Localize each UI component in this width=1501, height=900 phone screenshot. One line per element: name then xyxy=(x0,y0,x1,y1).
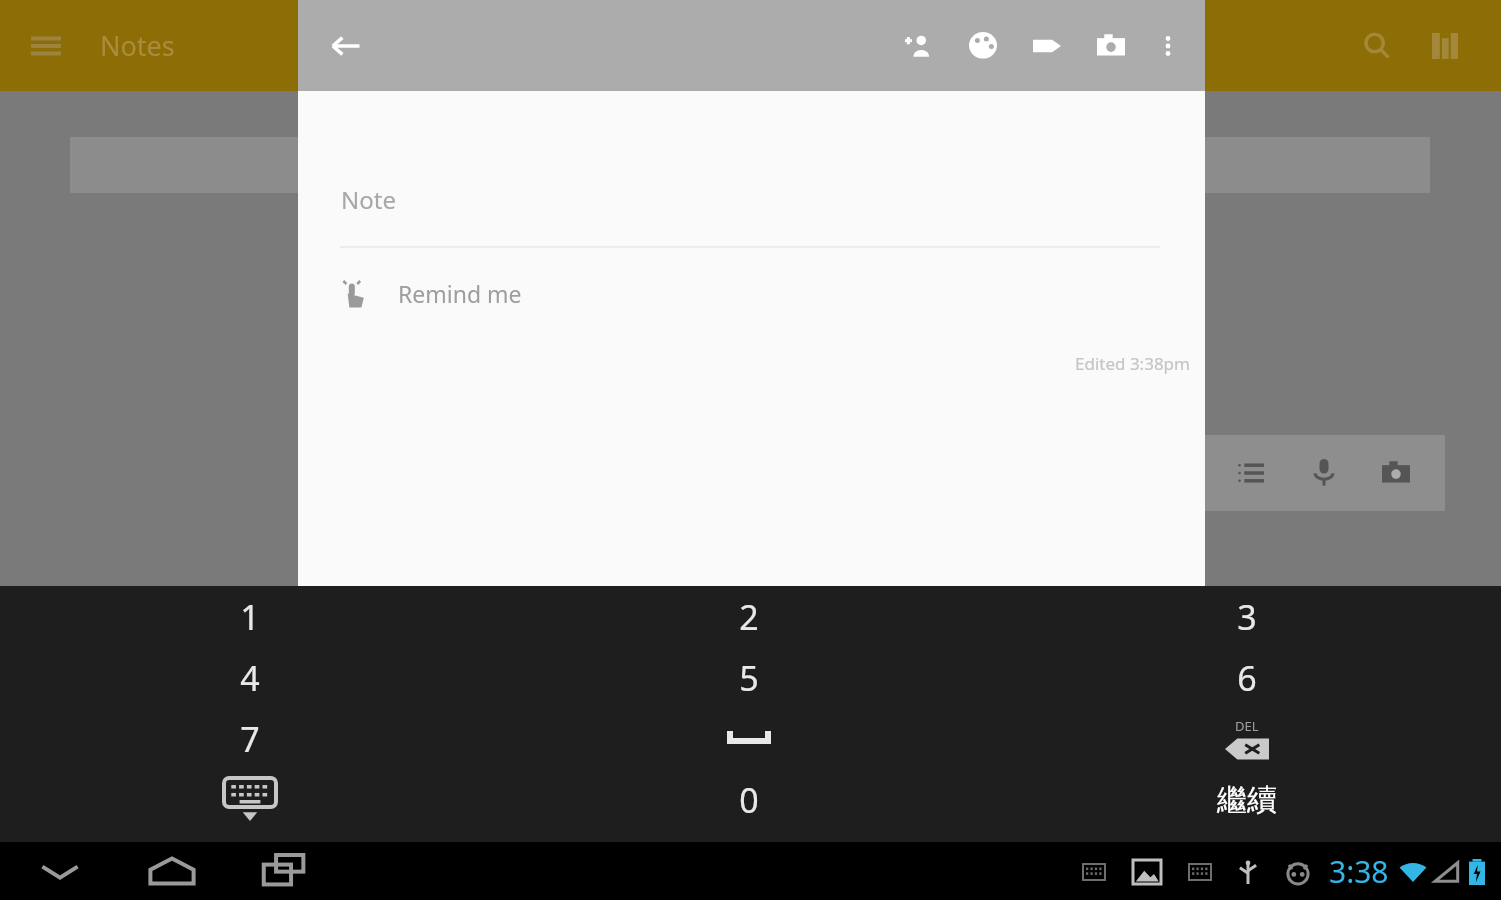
staticText: 7 xyxy=(240,716,260,762)
button[interactable]: New list xyxy=(1228,450,1274,496)
staticText: Edited 3:38pm xyxy=(1075,352,1190,375)
button[interactable]: Back xyxy=(320,20,372,72)
staticText: Remind me xyxy=(398,278,522,309)
button[interactable]: Change color xyxy=(951,14,1015,78)
staticText: 3:38 xyxy=(1329,851,1389,892)
staticText: 3 xyxy=(1237,594,1257,640)
staticText: 5 xyxy=(739,655,759,701)
staticText: Note xyxy=(341,183,396,216)
button[interactable]: Add label xyxy=(1015,14,1079,78)
staticText: 繼續 xyxy=(1217,781,1277,819)
button[interactable]: Remind me xyxy=(338,268,598,318)
button[interactable]: Add collaborator xyxy=(887,14,951,78)
button[interactable]: 0 xyxy=(689,768,809,832)
button[interactable]: Back xyxy=(24,842,96,900)
staticText: 4 xyxy=(240,655,260,701)
button[interactable]: Home xyxy=(136,842,208,900)
button[interactable]: Delete xyxy=(1187,703,1307,775)
staticText: 6 xyxy=(1237,655,1257,701)
button[interactable]: 2 xyxy=(689,585,809,649)
staticText: 0 xyxy=(739,777,759,823)
button[interactable]: 1 xyxy=(190,585,310,649)
button[interactable]: Search xyxy=(1349,18,1405,74)
button[interactable]: Hide keyboard xyxy=(195,764,305,836)
button[interactable]: Toggle view xyxy=(1417,18,1473,74)
button[interactable]: Recent apps xyxy=(248,842,320,900)
button[interactable]: More options xyxy=(1143,21,1193,71)
button[interactable]: 4 xyxy=(190,646,310,710)
button[interactable]: 繼續 xyxy=(1177,768,1317,832)
button[interactable]: 7 xyxy=(190,707,310,771)
button[interactable]: Photo note xyxy=(1373,450,1419,496)
button[interactable]: Open navigation drawer xyxy=(20,20,72,72)
button[interactable]: Space xyxy=(709,707,789,771)
staticText: DEL xyxy=(1235,717,1259,735)
staticText: 1 xyxy=(240,594,260,640)
button[interactable]: Voice note xyxy=(1301,450,1347,496)
button[interactable]: Add photo xyxy=(1079,14,1143,78)
button[interactable]: 3 xyxy=(1187,585,1307,649)
button[interactable]: 6 xyxy=(1187,646,1307,710)
button[interactable]: 5 xyxy=(689,646,809,710)
staticText: Notes xyxy=(100,27,175,64)
staticText: 2 xyxy=(739,594,759,640)
